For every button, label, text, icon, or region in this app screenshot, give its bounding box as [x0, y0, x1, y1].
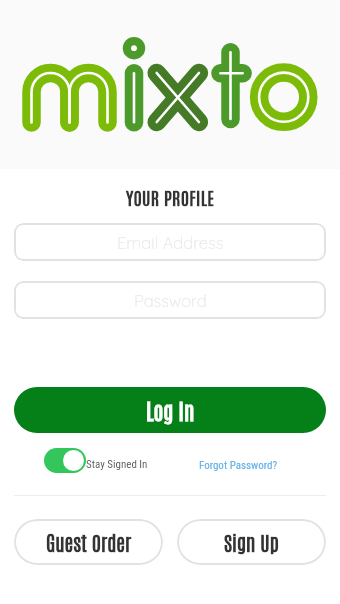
staticText: Log In	[146, 396, 195, 424]
staticText: Forgot Password?	[199, 459, 278, 472]
staticText: Password	[134, 290, 207, 311]
staticText: Stay Signed In	[86, 458, 148, 471]
button[interactable]: Sign Up	[177, 519, 326, 565]
button[interactable]: Stay Signed In	[44, 448, 149, 473]
button[interactable]: Password	[14, 281, 326, 319]
staticText: Sign Up	[224, 529, 279, 555]
button[interactable]: Forgot Password?	[199, 459, 278, 472]
staticText: Guest Order	[46, 529, 132, 555]
staticText: Email Address	[117, 232, 224, 253]
button[interactable]: Guest Order	[14, 519, 163, 565]
staticText: YOUR PROFILE	[0, 185, 340, 208]
button[interactable]: Email Address	[14, 223, 326, 261]
button[interactable]: Log In	[14, 387, 326, 433]
